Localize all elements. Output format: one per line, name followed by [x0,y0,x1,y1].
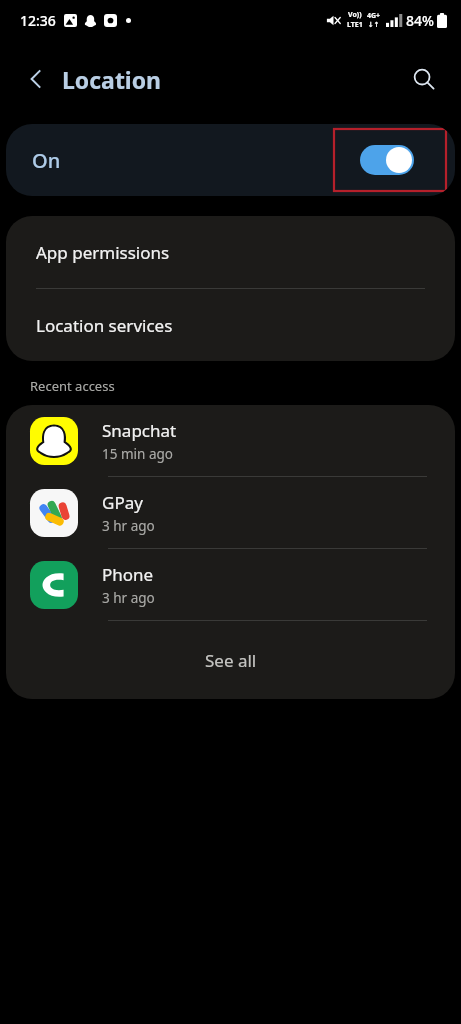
staticText: 84% [406,11,434,30]
button[interactable]: App permissions [6,216,455,288]
staticText: Recent access [30,377,115,395]
staticText: 12:36 [20,11,56,30]
staticText: App permissions [36,241,170,264]
button[interactable]: Location services [6,289,455,361]
staticText: ↓↑ [368,21,380,29]
staticText: 4G+ [367,11,381,21]
staticText: Location services [36,314,173,337]
button[interactable]: Phone [6,549,455,620]
staticText: See all [205,649,257,672]
staticText: Phone [102,563,154,586]
button[interactable]: On [6,124,455,196]
staticText: Location [62,64,162,95]
button[interactable]: Back [14,57,58,101]
staticText: 3 hr ago [102,517,155,535]
button[interactable]: See all [6,621,455,699]
staticText: On [32,147,61,174]
button[interactable]: GPay [6,477,455,548]
button[interactable]: Snapchat [6,405,455,476]
staticText: Vo)) [348,10,362,20]
staticText: 3 hr ago [102,589,155,607]
staticText: GPay [102,491,143,514]
staticText: Snapchat [102,419,177,442]
staticText: 15 min ago [102,445,173,463]
staticText: LTE1 [347,20,363,30]
button[interactable]: Search [401,56,447,102]
button[interactable]: Location on [360,145,414,175]
